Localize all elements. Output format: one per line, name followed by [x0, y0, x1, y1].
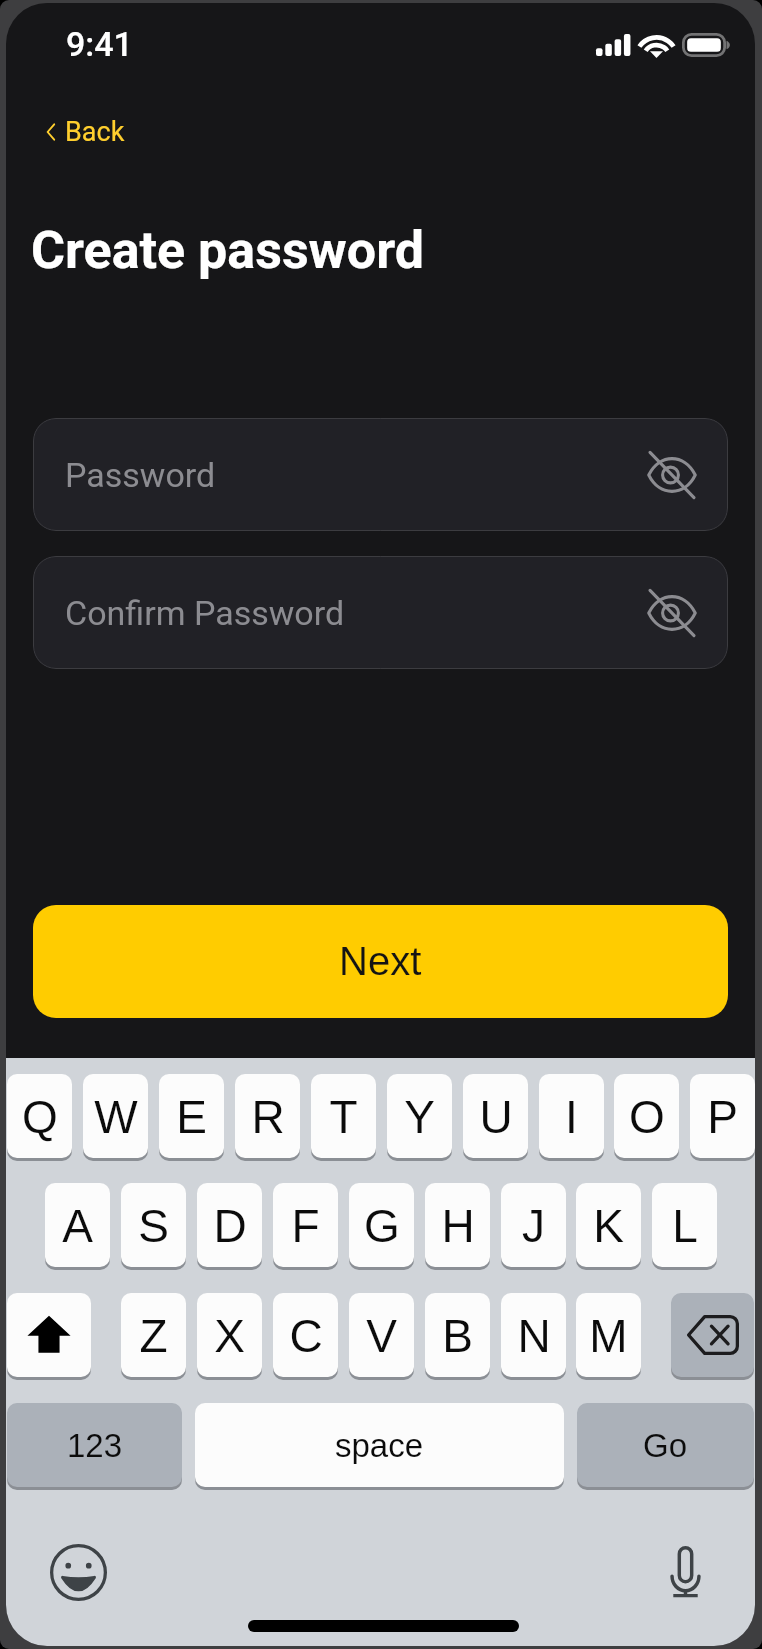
staticText: Q [22, 1091, 58, 1142]
button[interactable]: Go [577, 1403, 754, 1487]
staticText: A [62, 1200, 93, 1251]
staticText: S [138, 1200, 169, 1251]
button[interactable]: K [576, 1183, 641, 1267]
staticText: H [441, 1200, 475, 1251]
button[interactable]: E [159, 1074, 224, 1158]
button[interactable]: Q [7, 1074, 72, 1158]
button[interactable]: P [690, 1074, 755, 1158]
staticText: U [479, 1091, 513, 1142]
button[interactable]: M [576, 1293, 641, 1377]
staticText: W [94, 1091, 138, 1142]
button[interactable]: A [45, 1183, 110, 1267]
staticText: Go [643, 1427, 688, 1464]
staticText: Confirm Password [65, 593, 345, 633]
staticText: Password [65, 455, 216, 495]
button[interactable]: Show password [635, 438, 709, 512]
button[interactable]: B [425, 1293, 490, 1377]
button[interactable]: Z [121, 1293, 186, 1377]
staticText: R [251, 1091, 285, 1142]
staticText: O [629, 1091, 665, 1142]
button[interactable]: W [83, 1074, 148, 1158]
button[interactable]: N [501, 1293, 566, 1377]
staticText: K [593, 1200, 624, 1251]
staticText: B [442, 1310, 473, 1361]
staticText: X [214, 1310, 245, 1361]
button[interactable]: Shift [7, 1293, 91, 1377]
button[interactable]: I [539, 1074, 604, 1158]
button[interactable]: Next [33, 905, 728, 1018]
button[interactable]: C [273, 1293, 338, 1377]
button[interactable]: Confirm Password [33, 556, 728, 669]
button[interactable]: L [652, 1183, 717, 1267]
button[interactable]: Y [387, 1074, 452, 1158]
button[interactable]: S [121, 1183, 186, 1267]
button[interactable]: space [195, 1403, 564, 1487]
button[interactable]: X [197, 1293, 262, 1377]
staticText: 9:41 [66, 24, 133, 64]
staticText: V [366, 1310, 397, 1361]
staticText: I [565, 1091, 578, 1142]
button[interactable]: V [349, 1293, 414, 1377]
button[interactable]: G [349, 1183, 414, 1267]
staticText: F [291, 1200, 320, 1251]
button[interactable]: O [614, 1074, 679, 1158]
staticText: Z [139, 1310, 168, 1361]
button[interactable]: Backspace [671, 1293, 754, 1377]
staticText: 123 [67, 1427, 123, 1464]
button[interactable]: R [235, 1074, 300, 1158]
button[interactable]: Back [32, 103, 142, 161]
staticText: Next [339, 939, 422, 984]
staticText: space [335, 1427, 424, 1464]
button[interactable]: H [425, 1183, 490, 1267]
button[interactable]: F [273, 1183, 338, 1267]
staticText: N [517, 1310, 551, 1361]
button[interactable]: U [463, 1074, 528, 1158]
staticText: C [289, 1310, 323, 1361]
staticText: D [213, 1200, 247, 1251]
staticText: T [329, 1091, 358, 1142]
staticText: G [364, 1200, 400, 1251]
button[interactable]: Password [33, 418, 728, 531]
button[interactable]: D [197, 1183, 262, 1267]
button[interactable]: T [311, 1074, 376, 1158]
staticText: J [522, 1200, 545, 1251]
staticText: E [176, 1091, 207, 1142]
staticText: M [589, 1310, 628, 1361]
button[interactable]: Dictation [653, 1540, 717, 1604]
staticText: Create password [31, 220, 424, 281]
staticText: P [707, 1091, 738, 1142]
staticText: Y [404, 1091, 435, 1142]
staticText: Back [65, 116, 125, 148]
button[interactable]: Emoji keyboard [46, 1540, 110, 1604]
staticText: L [672, 1200, 698, 1251]
button[interactable]: J [501, 1183, 566, 1267]
button[interactable]: Show password [635, 576, 709, 650]
button[interactable]: 123 [7, 1403, 182, 1487]
